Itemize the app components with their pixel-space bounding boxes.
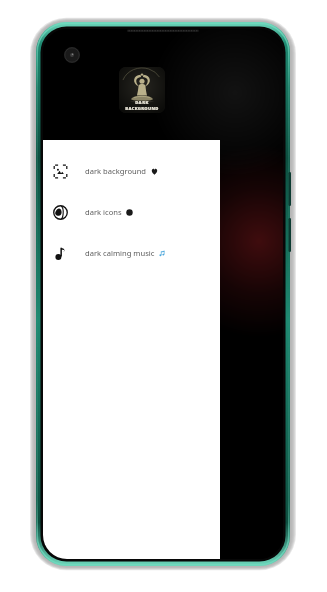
button[interactable]: dark icons [43,201,220,223]
staticText: DARK [135,100,149,106]
staticText: dark calming music [85,248,155,258]
staticText: dark background [85,166,147,176]
staticText: BACKGROUND [125,106,159,112]
button[interactable]: Dark Background app icon [119,67,165,113]
staticText: dark icons [85,207,122,217]
other: Front camera [64,47,80,63]
button[interactable]: dark background [43,160,220,182]
button[interactable]: dark calming music [43,242,220,264]
